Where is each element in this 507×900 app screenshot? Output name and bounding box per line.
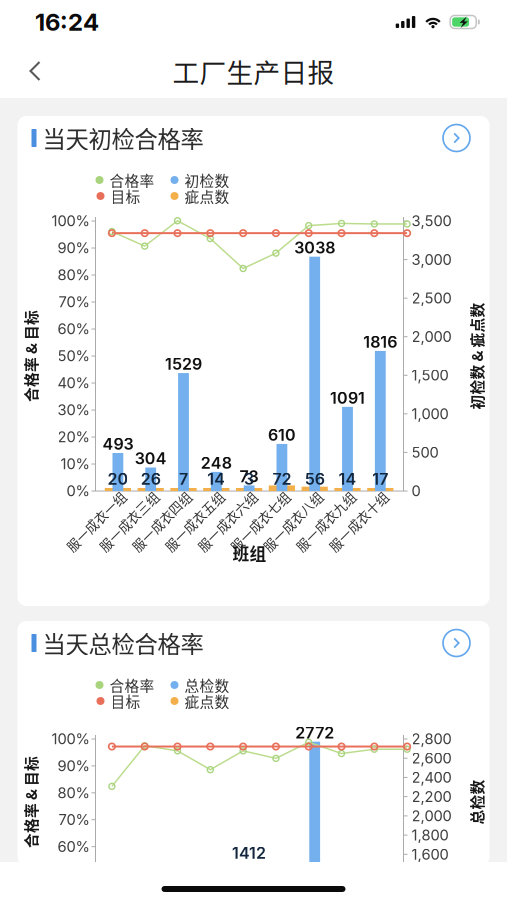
staticText: 服一成衣七组 [221,512,299,530]
staticText: 16:24 [35,7,99,36]
staticText: 304 [135,449,167,468]
staticText: 56 [305,469,325,489]
staticText: 3,000 [411,251,451,268]
staticText: 疵点数 [184,690,229,712]
staticText: 17 [372,469,388,489]
staticText: 248 [201,453,232,473]
staticText: 7 [179,469,188,489]
staticText: 初检数 & 疵点数 [423,345,507,367]
staticText: 服一成衣六组 [188,512,266,530]
staticText: 73 [240,467,259,486]
staticText: 当天初检合格率 [42,121,203,155]
staticText: 工厂生产日报 [172,52,334,90]
staticText: 3,500 [411,212,451,230]
staticText: 1412 [232,843,266,863]
staticText: 100% [51,212,89,230]
staticText: 14 [207,469,225,489]
staticText: 服一成衣九组 [286,512,364,530]
staticText: 服一成衣八组 [254,512,332,530]
staticText: 2,200 [411,788,451,805]
staticText: 合格率 [109,674,154,696]
staticText: 目标 [110,690,140,712]
staticText: 服一成衣三组 [90,512,168,530]
staticText: 20 [107,469,128,489]
staticText: 610 [268,425,296,445]
staticText: 70% [58,811,89,828]
staticText: 2772 [295,723,334,742]
staticText: 70% [58,293,89,311]
staticText: 1091 [330,388,365,408]
staticText: 2,600 [411,749,451,767]
staticText: 1529 [165,354,202,374]
staticText: 当天总检合格率 [42,626,203,660]
staticText: 疵点数 [184,185,229,207]
staticText: 初检数 [184,169,229,191]
staticText: 2,000 [411,328,451,345]
staticText: 80% [57,266,89,284]
staticText: 1,800 [411,826,448,844]
staticText: 总检数 [184,674,229,696]
staticText: 2,000 [411,807,451,825]
staticText: 总检数 [454,791,499,813]
staticText: 服一成衣四组 [122,512,200,530]
staticText: 3038 [294,238,335,257]
staticText: 2,400 [411,769,451,786]
button[interactable]: 返回 [12,45,58,96]
staticText: 80% [57,784,89,802]
staticText: 90% [57,239,89,257]
staticText: 30% [57,401,89,419]
staticText: 10% [60,455,89,473]
staticText: 100% [51,730,89,748]
staticText: 2,800 [411,730,451,748]
staticText: 服一成衣十组 [319,512,397,530]
staticText: 500 [411,444,438,461]
staticText: 72 [272,469,291,489]
staticText: 合格率 [109,169,154,191]
button[interactable]: 查看详情 [437,626,475,660]
staticText: 1816 [363,332,397,352]
staticText: 服一成衣五组 [155,512,233,530]
staticText: 目标 [110,185,140,207]
staticText: 0 [411,482,420,500]
staticText: 60% [57,838,89,855]
staticText: 26 [141,469,161,489]
staticText: 1,500 [411,366,448,384]
staticText: 合格率 & 目标 [0,345,76,367]
staticText: 14 [338,469,356,489]
staticText: 3 [244,469,254,489]
staticText: 40% [57,374,89,392]
staticText: 班组 [232,541,266,565]
staticText: 2,500 [411,289,451,307]
staticText: 50% [57,347,89,365]
staticText: 合格率 & 目标 [0,791,76,813]
staticText: 服一成衣一组 [57,512,135,530]
staticText: 20% [57,428,89,446]
staticText: 493 [102,434,133,454]
button[interactable]: 查看详情 [437,121,475,155]
staticText: 1,600 [411,845,448,863]
staticText: 90% [57,757,89,775]
staticText: 60% [57,320,89,338]
staticText: 1,000 [411,405,448,423]
staticText: 0% [66,482,89,500]
